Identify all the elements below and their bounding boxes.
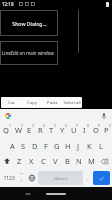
staticText: Copy — [27, 100, 37, 106]
staticText: 2 — [21, 123, 23, 128]
button[interactable]: K — [84, 138, 95, 153]
staticText: X — [29, 156, 34, 166]
staticText: 0 — [109, 123, 111, 128]
button[interactable]: L — [95, 138, 106, 153]
button[interactable]: Y — [57, 122, 68, 138]
button[interactable]: Change keyboard language — [26, 171, 38, 185]
staticText: B — [65, 156, 70, 166]
button[interactable]: H — [62, 138, 73, 153]
button[interactable]: Select all — [62, 97, 82, 108]
staticText: 4 — [43, 123, 45, 128]
staticText: R — [38, 125, 43, 135]
staticText: G — [54, 141, 60, 151]
button[interactable]: Q — [0, 122, 12, 138]
button[interactable]: LineEdit on main window — [0, 41, 58, 65]
staticText: Y — [60, 125, 65, 135]
staticText: GBoard — [54, 176, 67, 181]
button[interactable]: E — [24, 122, 35, 138]
staticText: H — [65, 141, 71, 151]
staticText: J — [77, 141, 80, 151]
staticText: N — [76, 156, 82, 166]
button[interactable]: D — [29, 138, 40, 153]
staticText: T — [49, 125, 54, 135]
button[interactable]: S — [18, 138, 29, 153]
button[interactable]: F — [40, 138, 51, 153]
staticText: , — [21, 175, 23, 183]
button[interactable]: Backspace — [97, 153, 112, 169]
staticText: V — [53, 156, 58, 166]
button[interactable]: M — [85, 153, 97, 169]
staticText: L — [99, 141, 103, 151]
button[interactable]: B — [61, 153, 73, 169]
staticText: 9 — [98, 123, 100, 128]
button[interactable]: W — [12, 122, 24, 138]
button[interactable]: T — [46, 122, 57, 138]
button[interactable]: I — [79, 122, 90, 138]
staticText: 6 — [65, 123, 67, 128]
button[interactable]: A — [7, 138, 18, 153]
staticText: LineEdit on main window — [2, 50, 54, 56]
button[interactable]: Comma — [16, 171, 26, 185]
staticText: F — [44, 141, 48, 151]
button[interactable]: C — [37, 153, 49, 169]
button[interactable]: Z — [14, 153, 25, 169]
staticText: P — [104, 125, 109, 135]
button[interactable]: U — [68, 122, 79, 138]
staticText: Select all — [63, 100, 81, 106]
button[interactable]: Cut — [1, 97, 22, 108]
staticText: M — [88, 156, 95, 166]
staticText: O — [93, 125, 99, 135]
button[interactable]: Copy — [22, 97, 42, 108]
staticText: K — [87, 141, 92, 151]
button[interactable]: R — [35, 122, 46, 138]
button[interactable]: G — [51, 138, 62, 153]
staticText: E — [27, 125, 32, 135]
button[interactable]: Space — [38, 171, 83, 185]
button[interactable]: O — [90, 122, 101, 138]
button[interactable]: Enter — [93, 171, 110, 185]
staticText: Show Dialog... — [12, 20, 47, 27]
button[interactable]: J — [73, 138, 84, 153]
staticText: W — [15, 125, 22, 135]
button[interactable]: X — [25, 153, 37, 169]
staticText: I — [83, 125, 86, 135]
button[interactable]: Shift — [0, 153, 14, 169]
staticText: Paste — [47, 100, 58, 106]
staticText: A — [10, 141, 15, 151]
staticText: S — [21, 141, 26, 151]
staticText: 8 — [87, 123, 89, 128]
staticText: ?123 — [4, 175, 15, 182]
button[interactable]: Voice input — [99, 111, 108, 120]
button[interactable]: V — [49, 153, 61, 169]
button[interactable]: ?123 — [2, 171, 16, 185]
staticText: 5 — [54, 123, 56, 128]
button[interactable]: Period — [83, 171, 93, 185]
staticText: Cut — [8, 100, 15, 106]
staticText: U — [71, 125, 77, 135]
staticText: 1 — [9, 123, 11, 128]
staticText: 12:18 — [2, 1, 14, 7]
button[interactable]: Google search — [4, 112, 12, 120]
button[interactable]: P — [101, 122, 112, 138]
staticText: . — [87, 174, 89, 182]
button[interactable]: N — [73, 153, 85, 169]
button[interactable]: Paste — [42, 97, 62, 108]
staticText: 3 — [32, 123, 34, 128]
staticText: Z — [17, 156, 22, 166]
staticText: C — [41, 156, 46, 166]
staticText: 7 — [76, 123, 78, 128]
staticText: Q — [3, 125, 9, 135]
staticText: D — [32, 141, 38, 151]
button[interactable]: Show Dialog... — [0, 10, 58, 36]
